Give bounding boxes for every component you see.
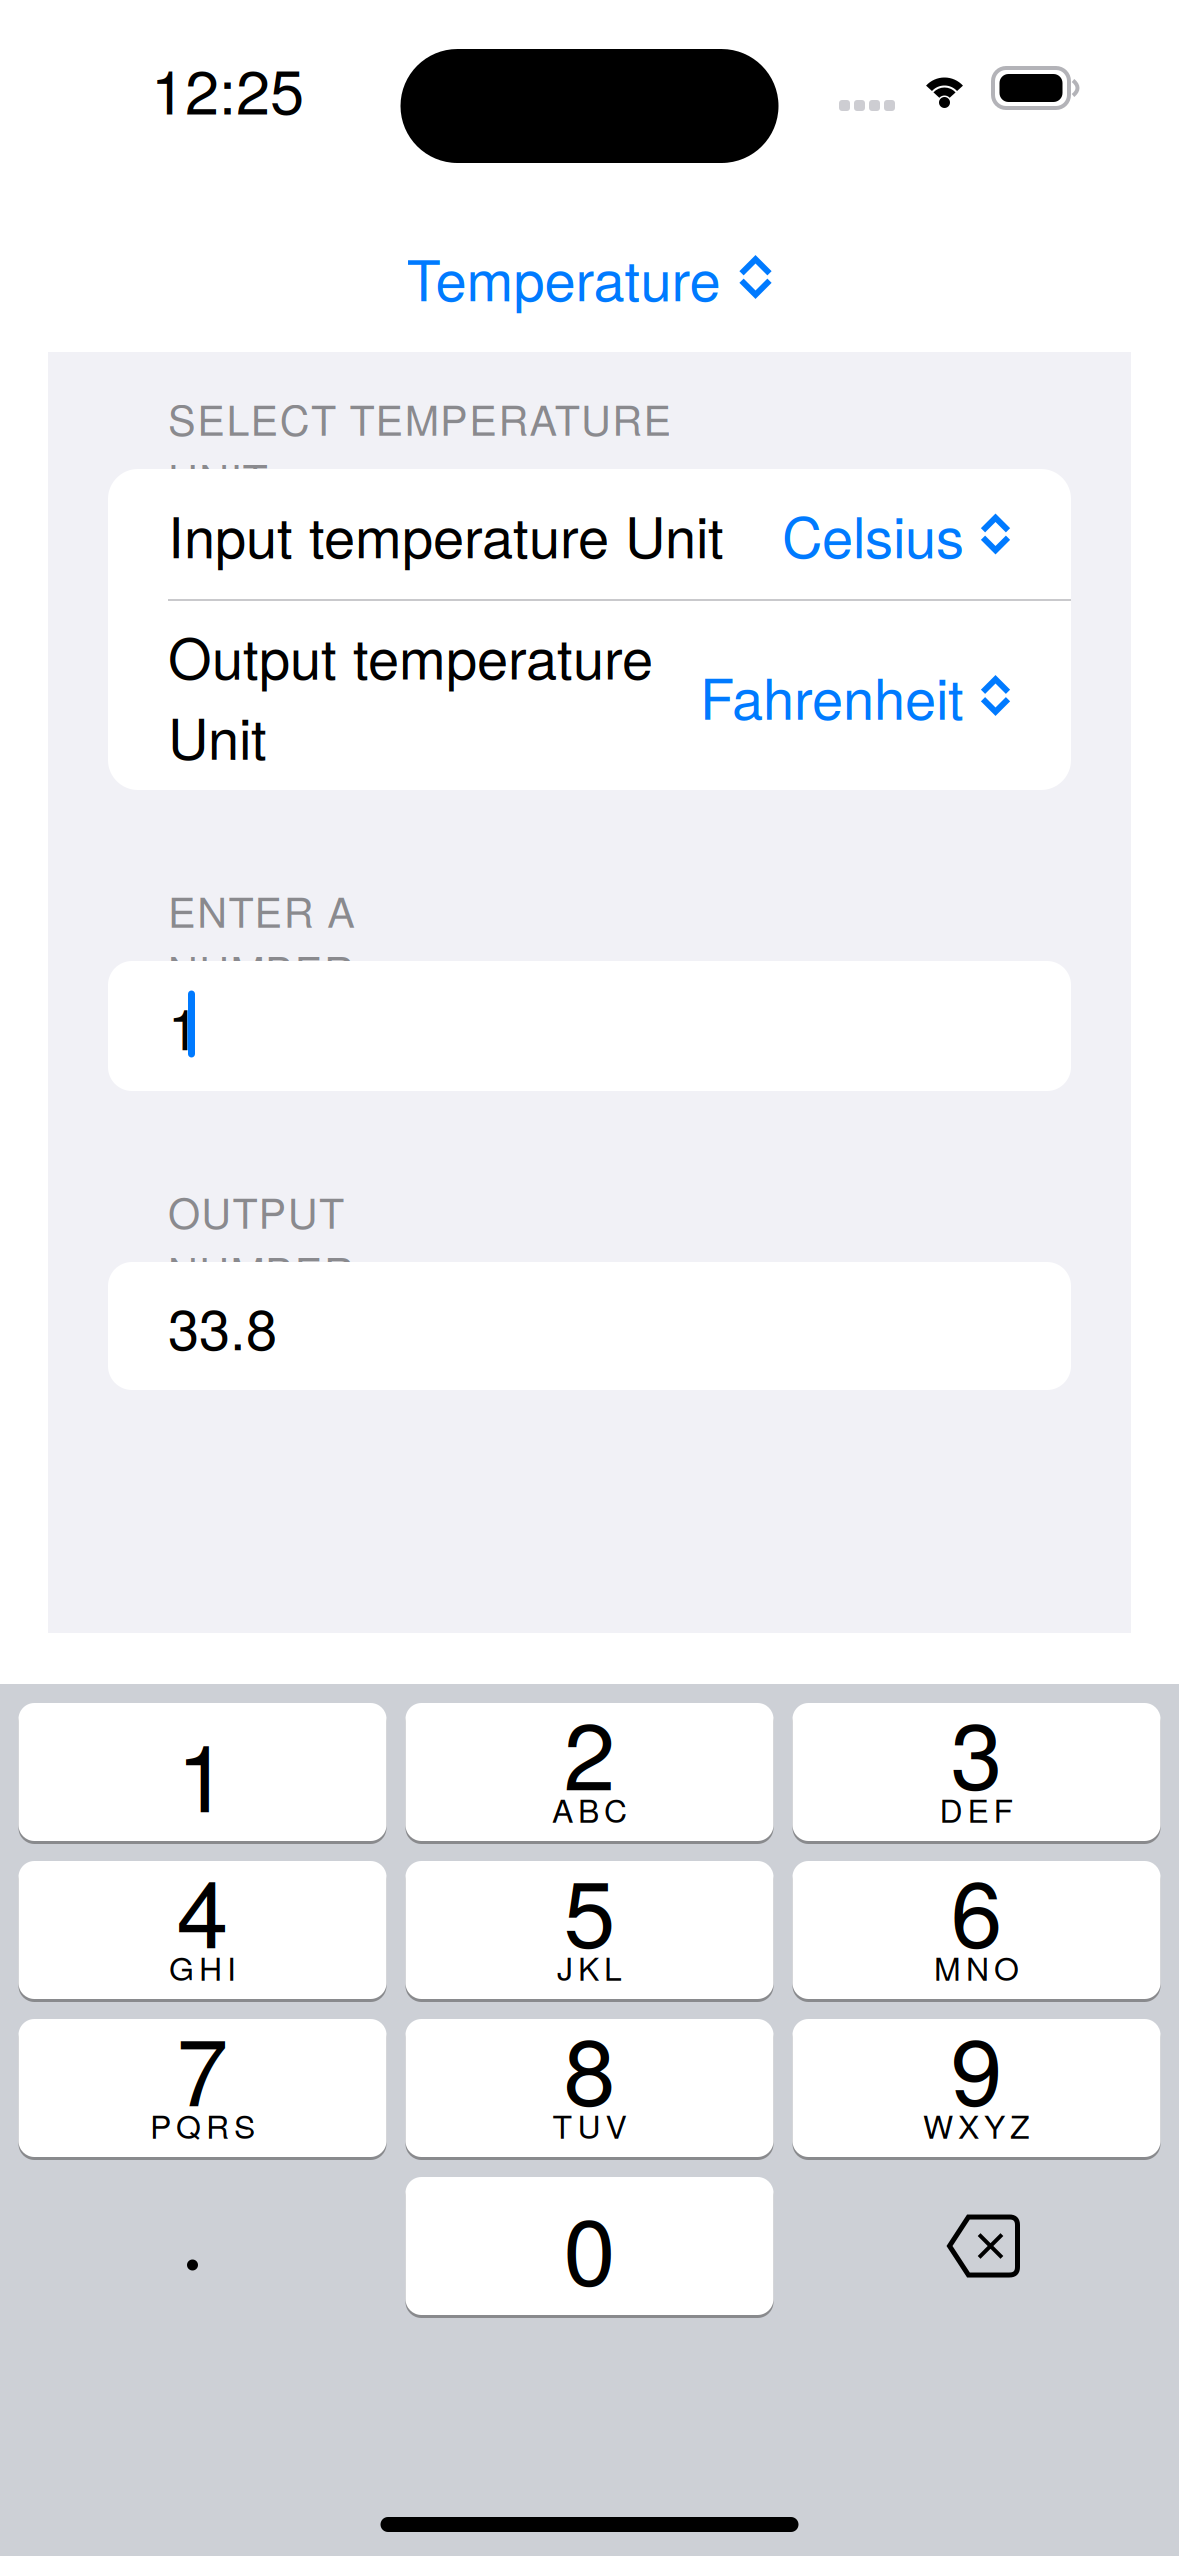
button[interactable]: Delete [792,2177,1160,2315]
staticText: 9 [950,1999,1002,2133]
staticText: OUTPUT NUMBER [168,1181,543,1241]
staticText: PQRS [150,2102,255,2148]
staticText: GHI [169,1944,236,1990]
staticText: ENTER A NUMBER [168,880,555,940]
button[interactable]: Celsius [782,494,1011,574]
button[interactable]: Fahrenheit [700,655,1011,736]
button[interactable]: 1 [18,1703,386,1841]
staticText: 0 [563,2179,615,2313]
button[interactable]: 4 [18,1861,386,1999]
staticText: WXYZ [923,2102,1030,2148]
staticText: 5 [563,1841,615,1975]
staticText: 7 [176,1999,228,2133]
staticText: Fahrenheit [700,655,964,736]
button[interactable]: 3 [792,1703,1160,1841]
button[interactable]: 6 [792,1861,1160,1999]
button[interactable]: 8 [405,2019,773,2157]
button[interactable]: Temperature [406,178,772,352]
staticText: ABC [552,1786,627,1832]
button[interactable]: 9 [792,2019,1160,2157]
staticText: 6 [950,1841,1002,1975]
staticText: DEF [939,1786,1013,1832]
button[interactable]: 2 [405,1703,773,1841]
staticText: Input temperature Unit [168,494,724,574]
button[interactable]: 0 [405,2177,773,2315]
staticText: 4 [176,1841,228,1975]
button[interactable]: 7 [18,2019,386,2157]
button[interactable]: 5 [405,1861,773,1999]
staticText: 8 [563,1999,615,2133]
staticText: 3 [950,1683,1002,1817]
staticText: 12:25 [151,44,304,132]
staticText: MNO [934,1944,1019,1990]
staticText: 33.8 [168,1286,277,1366]
staticText: 2 [563,1683,615,1817]
staticText: SELECT TEMPERATURE UNIT [168,388,784,448]
button[interactable]: Decimal point [18,2177,386,2315]
staticText: Celsius [782,494,964,574]
staticText: Temperature [406,237,720,317]
staticText: 1 [168,986,199,1066]
staticText: 1 [176,1705,228,1839]
staticText: TUV [552,2102,626,2148]
staticText: Output temperature Unit [168,615,653,776]
staticText: JKL [557,1944,622,1990]
